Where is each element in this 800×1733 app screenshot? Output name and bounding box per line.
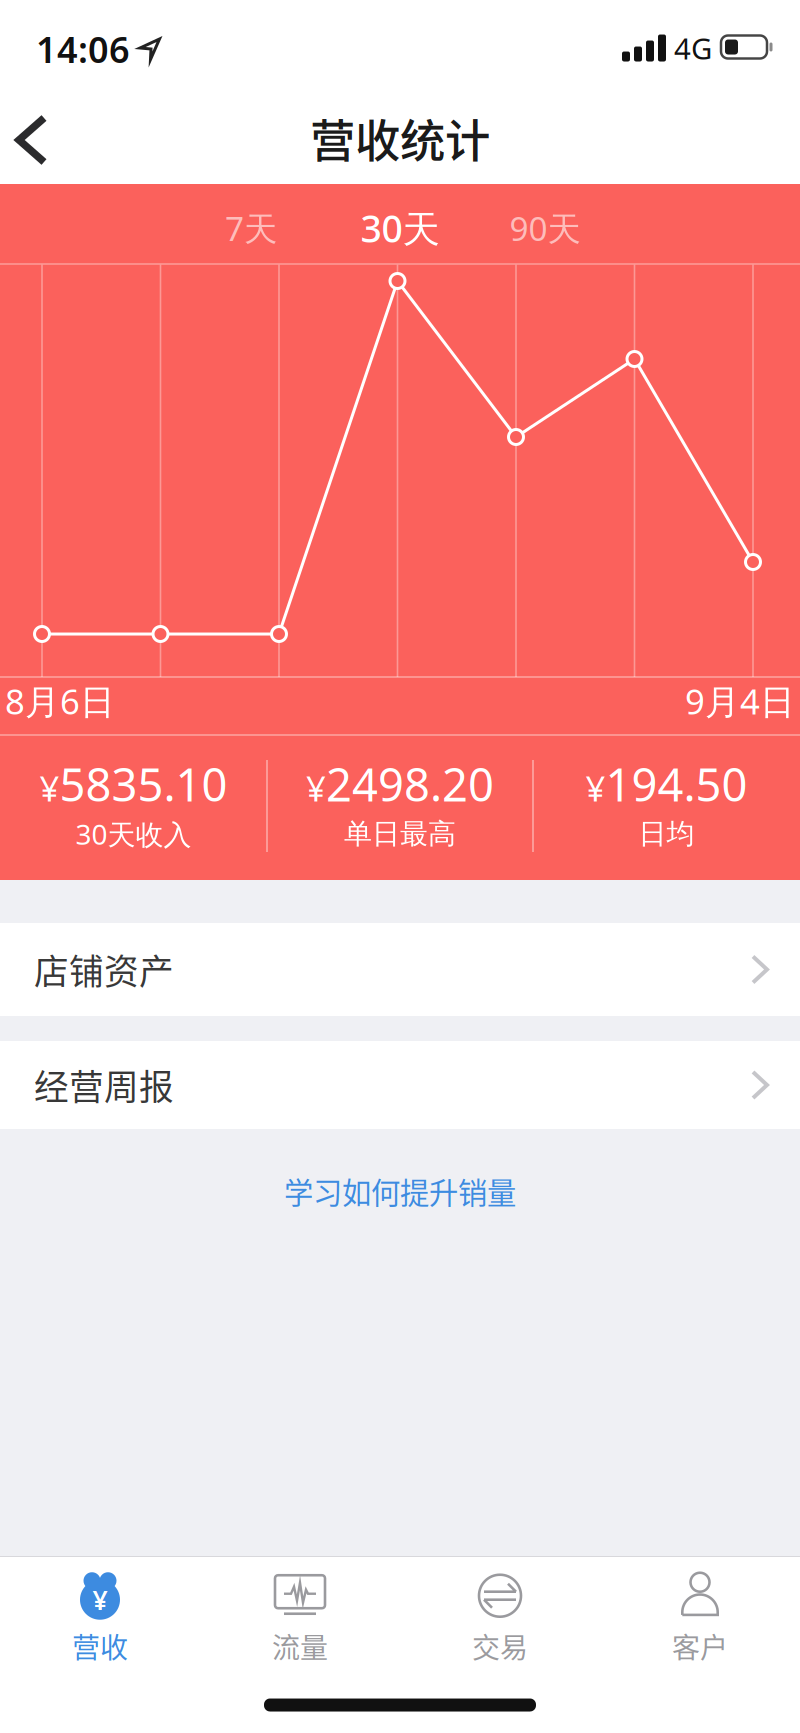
staticText: 30天 (360, 203, 439, 253)
staticText: 学习如何提升销量 (284, 1170, 516, 1212)
staticText: 日均 (638, 817, 694, 851)
button[interactable]: 经营周报 (0, 1041, 800, 1129)
staticText: 4G (674, 28, 712, 67)
staticText: 14:06 (36, 25, 130, 73)
button[interactable]: 店铺资产 (0, 923, 800, 1016)
staticText: 店铺资产 (34, 944, 174, 995)
button[interactable]: 90天 (509, 206, 580, 250)
button[interactable]: 流量 (200, 1556, 400, 1686)
staticText: 客户 (672, 1626, 728, 1666)
button[interactable]: 学习如何提升销量 (284, 1170, 516, 1212)
staticText: 30天收入 (75, 815, 191, 853)
button[interactable]: 30天 (360, 203, 439, 253)
button[interactable]: ¥ (0, 1556, 200, 1686)
staticText: 流量 (272, 1626, 328, 1666)
staticText: 经营周报 (34, 1060, 174, 1110)
staticText: 营收统计 (310, 105, 490, 171)
staticText: ¥ (92, 1582, 107, 1617)
button[interactable]: 7天 (225, 206, 277, 250)
staticText: 9月4日 (685, 678, 795, 724)
button[interactable]: 交易 (400, 1556, 600, 1686)
staticText: 单日最高 (344, 817, 456, 851)
staticText: 交易 (472, 1626, 528, 1666)
staticText: ¥5835.10 (39, 754, 227, 814)
staticText: ¥2498.20 (306, 754, 494, 814)
button[interactable]: 客户 (600, 1556, 800, 1686)
button[interactable]: Back (14, 114, 54, 166)
staticText: 7天 (225, 206, 277, 250)
staticText: 90天 (509, 206, 580, 250)
staticText: 营收 (72, 1626, 128, 1666)
staticText: 8月6日 (5, 678, 115, 724)
staticText: ¥194.50 (585, 754, 747, 814)
